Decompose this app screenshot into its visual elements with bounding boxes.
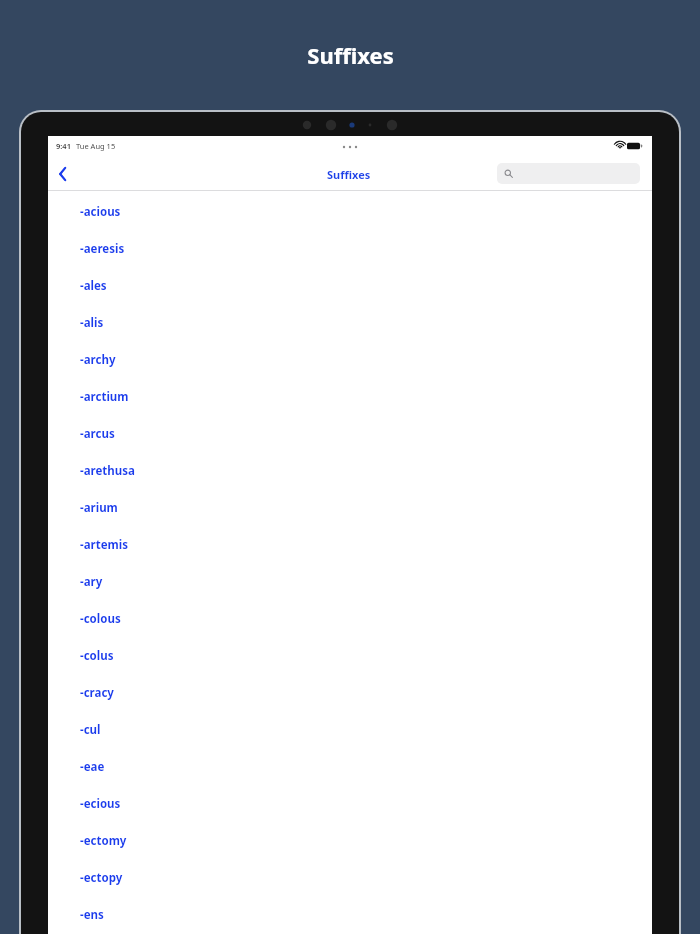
button[interactable]: Search xyxy=(497,163,640,184)
staticText: Suffixes xyxy=(307,40,394,70)
button[interactable]: -cul xyxy=(48,711,652,748)
button[interactable]: -alis xyxy=(48,304,652,341)
button[interactable]: -colus xyxy=(48,637,652,674)
staticText: -cracy xyxy=(80,685,114,701)
button[interactable]: -acious xyxy=(48,193,652,230)
button[interactable]: -colous xyxy=(48,600,652,637)
staticText: Tue Aug 15 xyxy=(76,141,116,151)
button[interactable]: -ectopy xyxy=(48,859,652,896)
staticText: -ary xyxy=(80,574,103,590)
staticText: -ales xyxy=(80,278,107,294)
staticText: -arethusa xyxy=(80,463,135,479)
button[interactable]: -arethusa xyxy=(48,452,652,489)
button[interactable]: -arctium xyxy=(48,378,652,415)
button[interactable]: -arcus xyxy=(48,415,652,452)
button[interactable]: -archy xyxy=(48,341,652,378)
button[interactable]: -cracy xyxy=(48,674,652,711)
staticText: -ecious xyxy=(80,796,121,812)
staticText: -arctium xyxy=(80,389,129,405)
button[interactable]: -artemis xyxy=(48,526,652,563)
staticText: -archy xyxy=(80,352,116,368)
button[interactable]: -ary xyxy=(48,563,652,600)
button[interactable]: -arium xyxy=(48,489,652,526)
staticText: -cul xyxy=(80,722,101,738)
button[interactable]: -ectomy xyxy=(48,822,652,859)
button[interactable]: -aeresis xyxy=(48,230,652,267)
button[interactable]: -ecious xyxy=(48,785,652,822)
button[interactable]: -ales xyxy=(48,267,652,304)
staticText: -ectopy xyxy=(80,870,123,886)
staticText: Suffixes xyxy=(327,167,371,182)
staticText: -acious xyxy=(80,204,121,220)
staticText: -eae xyxy=(80,759,105,775)
button[interactable]: -ens xyxy=(48,896,652,933)
staticText: -aeresis xyxy=(80,241,125,257)
button[interactable]: -eae xyxy=(48,748,652,785)
staticText: -artemis xyxy=(80,537,128,553)
button[interactable]: Back xyxy=(50,157,76,191)
staticText: -colus xyxy=(80,648,114,664)
staticText: -ens xyxy=(80,907,104,923)
staticText: -arium xyxy=(80,500,118,516)
staticText: -ectomy xyxy=(80,833,127,849)
staticText: -colous xyxy=(80,611,121,627)
staticText: 9:41 xyxy=(56,141,71,151)
staticText: -arcus xyxy=(80,426,115,442)
staticText: -alis xyxy=(80,315,104,331)
